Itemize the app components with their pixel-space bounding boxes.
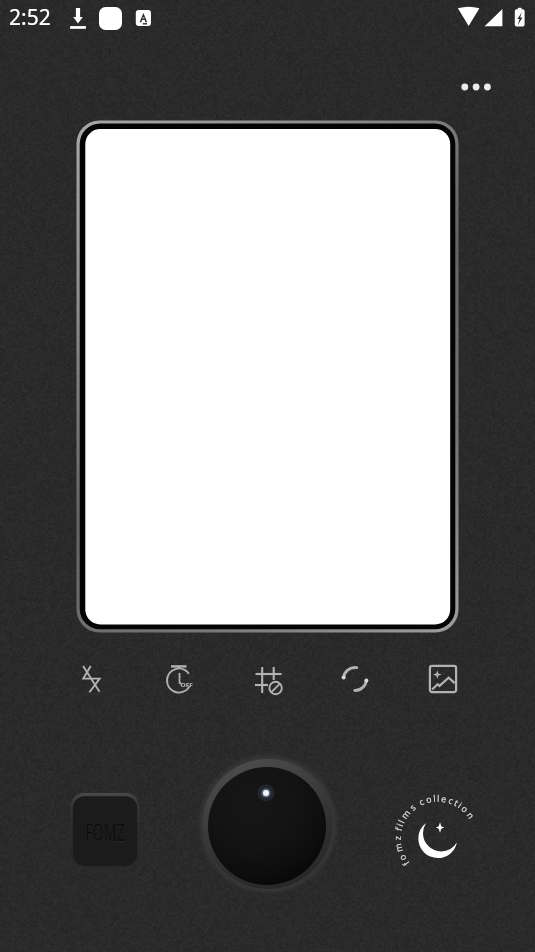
staticText: 2:52 [9,3,51,32]
button[interactable]: More options [449,62,501,114]
button[interactable]: FOMZ film stock [71,791,139,867]
button[interactable]: fomz films collection [390,790,486,886]
button[interactable]: Shutter [197,753,339,895]
button[interactable]: Gallery [418,654,468,704]
button[interactable]: Flash off [66,654,116,704]
button[interactable]: Grid off [242,654,292,704]
button[interactable]: Timer off [154,654,204,704]
button[interactable]: Switch camera [330,654,380,704]
